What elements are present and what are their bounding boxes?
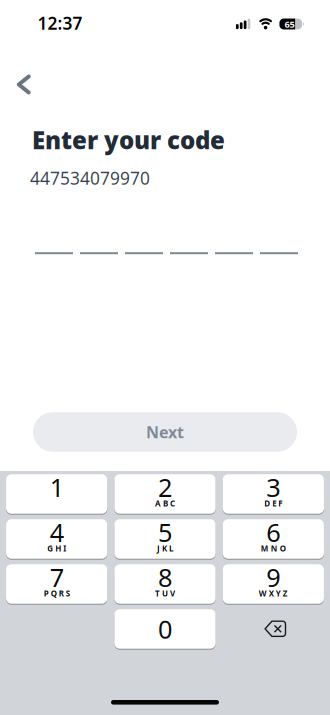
staticText: 8	[158, 560, 172, 594]
staticText: W X Y Z	[259, 588, 288, 599]
button[interactable]: Next	[33, 412, 297, 452]
staticText: 7	[50, 560, 64, 594]
staticText: Next	[146, 421, 184, 443]
button[interactable]: 2	[114, 474, 216, 514]
staticText: M N O	[261, 543, 286, 554]
staticText: Enter your code	[32, 124, 225, 156]
button[interactable]: 8	[114, 564, 216, 604]
staticText: 9	[266, 560, 280, 594]
button[interactable]: 9	[223, 564, 324, 604]
staticText: 65	[284, 18, 294, 30]
staticText: 447534079970	[30, 166, 150, 189]
button[interactable]: 4	[6, 519, 107, 559]
staticText: A B C	[155, 498, 175, 509]
staticText: 4	[50, 515, 64, 549]
staticText: 6	[266, 515, 280, 549]
staticText: 12:37	[37, 11, 82, 34]
staticText: T U V	[155, 588, 175, 599]
button[interactable]: 0	[114, 609, 216, 649]
button[interactable]: 5	[114, 519, 216, 559]
staticText: P Q R S	[44, 588, 70, 599]
button[interactable]: Back	[1, 62, 45, 106]
staticText: 1	[50, 470, 64, 504]
button[interactable]: Delete	[225, 609, 326, 649]
staticText: D E F	[264, 498, 282, 509]
button[interactable]: 1	[6, 474, 107, 514]
staticText: G H I	[47, 543, 66, 554]
staticText: 3	[266, 470, 280, 504]
button[interactable]: 6	[223, 519, 324, 559]
staticText: 2	[158, 470, 172, 504]
button[interactable]: 7	[6, 564, 107, 604]
staticText: 0	[158, 612, 172, 646]
staticText: 5	[158, 515, 172, 549]
button[interactable]: 3	[223, 474, 324, 514]
staticText: J K L	[157, 543, 173, 554]
